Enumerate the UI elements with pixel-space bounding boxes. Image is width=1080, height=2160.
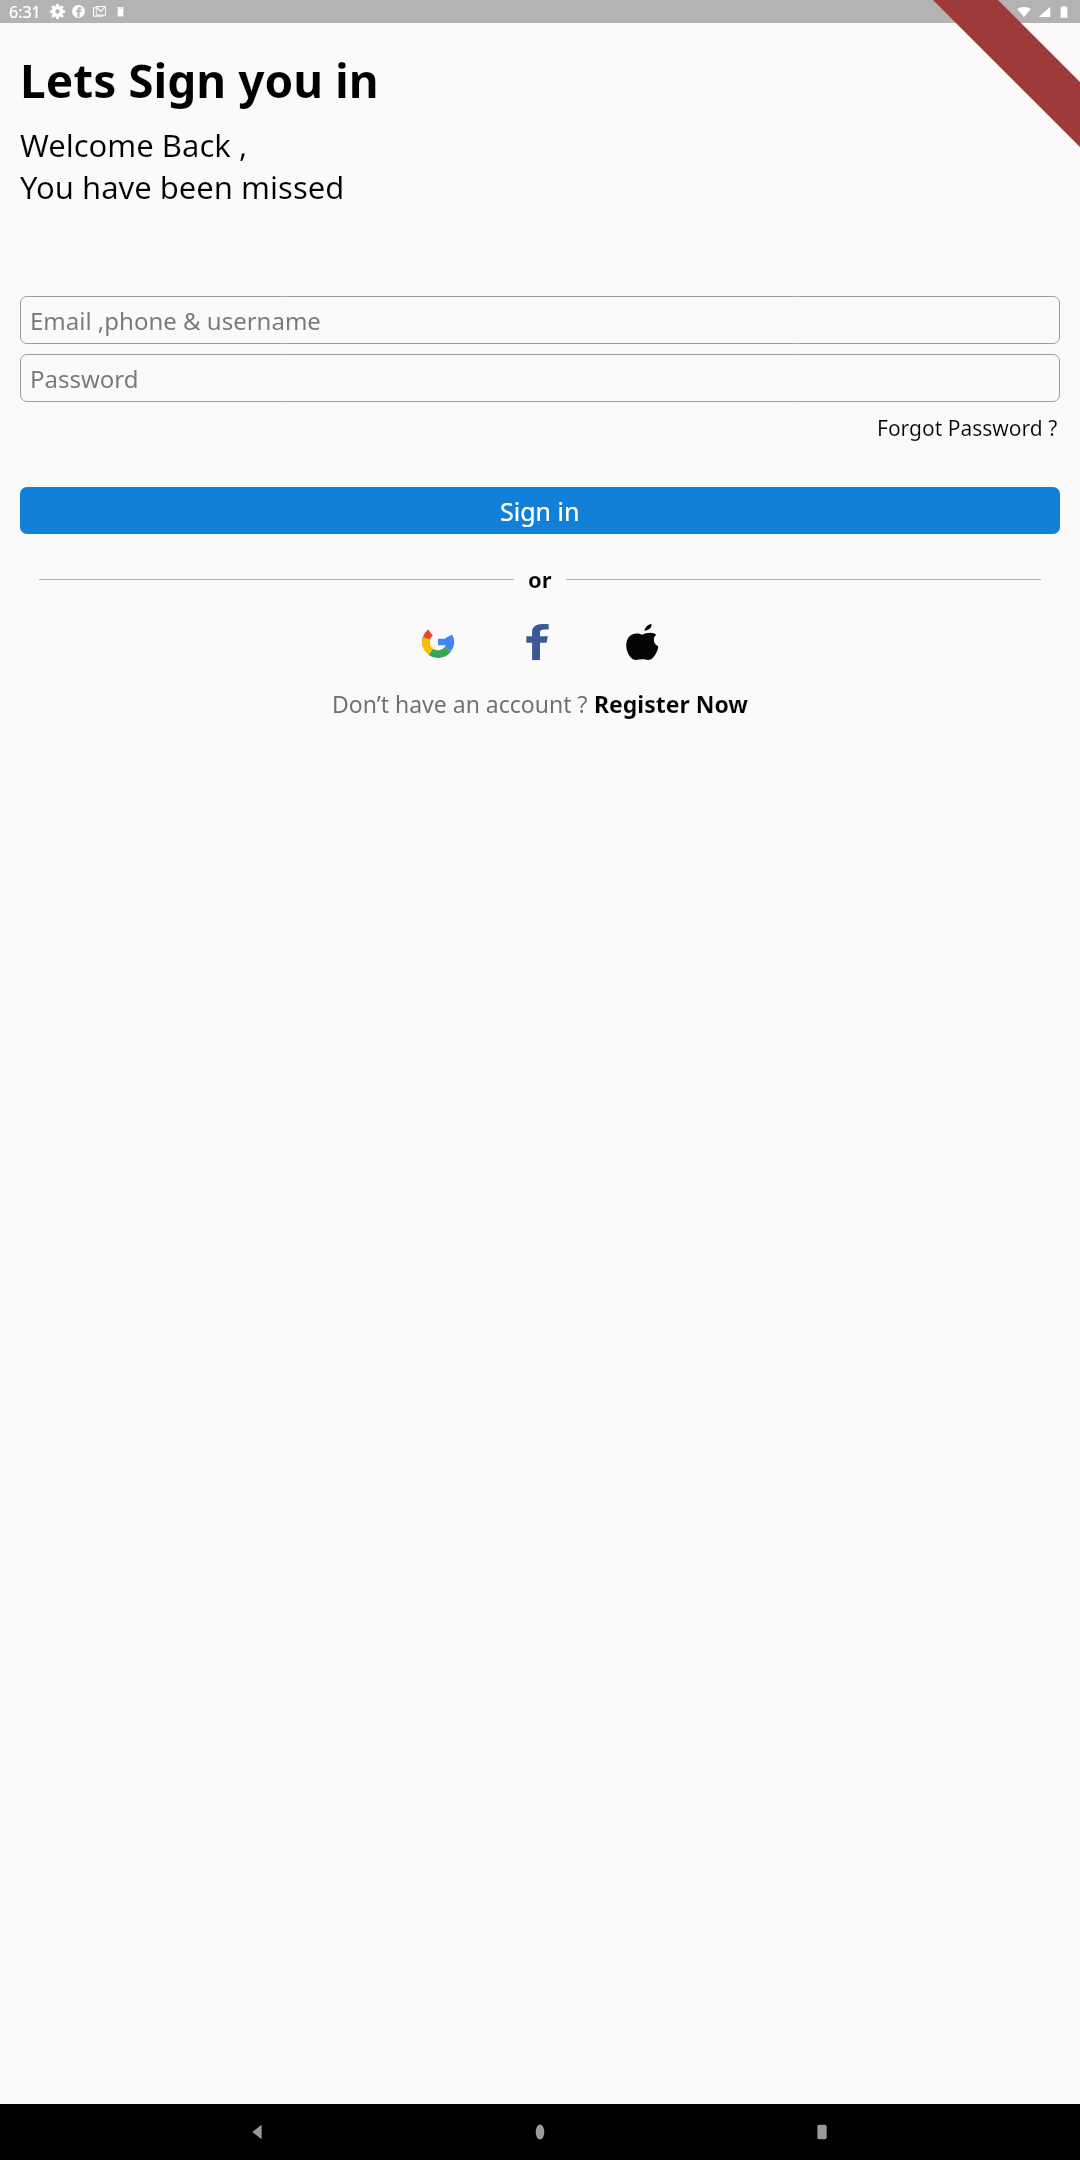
button[interactable]: Don’t have an account ? — [0, 688, 1080, 719]
staticText: Sign in — [500, 494, 580, 528]
staticText: Forgot Password ? — [877, 414, 1058, 443]
button[interactable]: Sign in — [20, 487, 1060, 534]
staticText: Lets Sign you in — [20, 49, 379, 112]
staticText: or — [528, 564, 552, 594]
button[interactable]: Sign in with Apple — [616, 616, 668, 668]
staticText: 6:31 — [9, 1, 41, 23]
staticText: Email ,phone & username — [30, 304, 321, 337]
button[interactable]: Sign in with Facebook — [514, 616, 566, 668]
button[interactable]: Forgot Password ? — [875, 412, 1060, 445]
staticText: Password — [30, 362, 139, 395]
button[interactable]: Email ,phone & username — [20, 296, 1060, 344]
button[interactable]: Home — [516, 2108, 564, 2156]
staticText: Welcome Back , — [20, 124, 248, 166]
button[interactable]: Recent apps — [798, 2108, 846, 2156]
button[interactable]: Back — [234, 2108, 282, 2156]
staticText: Register Now — [594, 688, 749, 719]
button[interactable]: Password — [20, 354, 1060, 402]
staticText: Don’t have an account ? — [332, 688, 594, 719]
staticText: You have been missed — [20, 166, 345, 208]
button[interactable]: Sign in with Google — [412, 616, 464, 668]
